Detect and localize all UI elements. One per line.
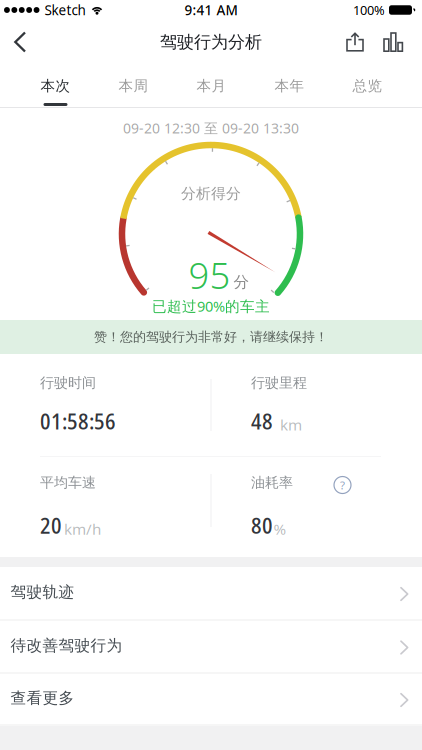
- button[interactable]: 查看更多: [0, 674, 422, 726]
- button[interactable]: Statistics: [374, 20, 422, 64]
- button[interactable]: Back: [0, 20, 44, 64]
- button[interactable]: 本月: [172, 64, 250, 108]
- staticText: 80: [251, 510, 273, 540]
- staticText: 本月: [196, 77, 226, 95]
- staticText: 赞！您的驾驶行为非常好，请继续保持！: [94, 329, 328, 345]
- staticText: 20: [40, 510, 62, 540]
- staticText: km/h: [64, 519, 101, 539]
- staticText: 100%: [353, 1, 385, 19]
- staticText: 行驶时间: [40, 374, 96, 391]
- button[interactable]: What is fuel consumption rate: [334, 474, 351, 491]
- staticText: 09-20 12:30 至 09-20 13:30: [123, 118, 299, 138]
- staticText: 48: [251, 406, 273, 436]
- staticText: 分析得分: [181, 184, 241, 203]
- staticText: 总览: [352, 77, 382, 95]
- staticText: 行驶里程: [251, 374, 307, 391]
- button[interactable]: 总览: [328, 64, 406, 108]
- staticText: %: [273, 519, 286, 539]
- staticText: 已超过90%的车主: [152, 296, 270, 316]
- staticText: ?: [340, 477, 345, 493]
- staticText: 油耗率: [251, 474, 293, 491]
- button[interactable]: 本周: [94, 64, 172, 108]
- button[interactable]: Share: [336, 20, 374, 64]
- staticText: 查看更多: [10, 688, 74, 708]
- staticText: 驾驶行为分析: [160, 31, 262, 53]
- staticText: 待改善驾驶行为: [10, 636, 122, 655]
- staticText: 本次: [40, 77, 70, 95]
- staticText: 9:41 AM: [184, 1, 237, 19]
- staticText: 本年: [274, 77, 304, 95]
- staticText: Sketch: [44, 1, 85, 19]
- button[interactable]: 本次: [16, 64, 94, 108]
- staticText: km: [280, 414, 302, 435]
- button[interactable]: 本年: [250, 64, 328, 108]
- staticText: 平均车速: [40, 474, 96, 491]
- staticText: 驾驶轨迹: [10, 582, 74, 602]
- staticText: 95: [188, 250, 230, 300]
- staticText: 01:58:56: [40, 406, 116, 436]
- button[interactable]: 待改善驾驶行为: [0, 621, 422, 674]
- staticText: 分: [233, 272, 249, 292]
- staticText: 本周: [118, 77, 148, 95]
- button[interactable]: 驾驶轨迹: [0, 567, 422, 621]
